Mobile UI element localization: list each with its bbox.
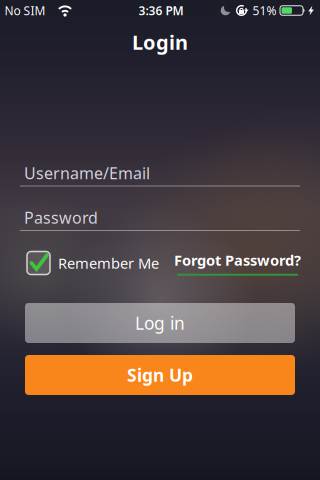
staticText: Password [24,207,98,228]
button[interactable]: Sign Up [25,355,295,395]
button[interactable]: Username/Email [20,150,300,188]
staticText: 3:36 PM [138,2,183,18]
button[interactable]: Log in [25,303,295,343]
staticText: No SIM [4,2,45,18]
button[interactable]: Forgot Password? [174,250,301,276]
staticText: Login [132,29,188,55]
staticText: Sign Up [127,363,193,386]
staticText: 51% [252,2,276,18]
button[interactable]: Password [20,194,300,232]
staticText: Log in [135,311,185,334]
staticText: Forgot Password? [174,250,301,270]
staticText: Username/Email [24,162,150,184]
staticText: Remember Me [58,253,159,273]
button[interactable]: Remember Me [27,251,159,274]
